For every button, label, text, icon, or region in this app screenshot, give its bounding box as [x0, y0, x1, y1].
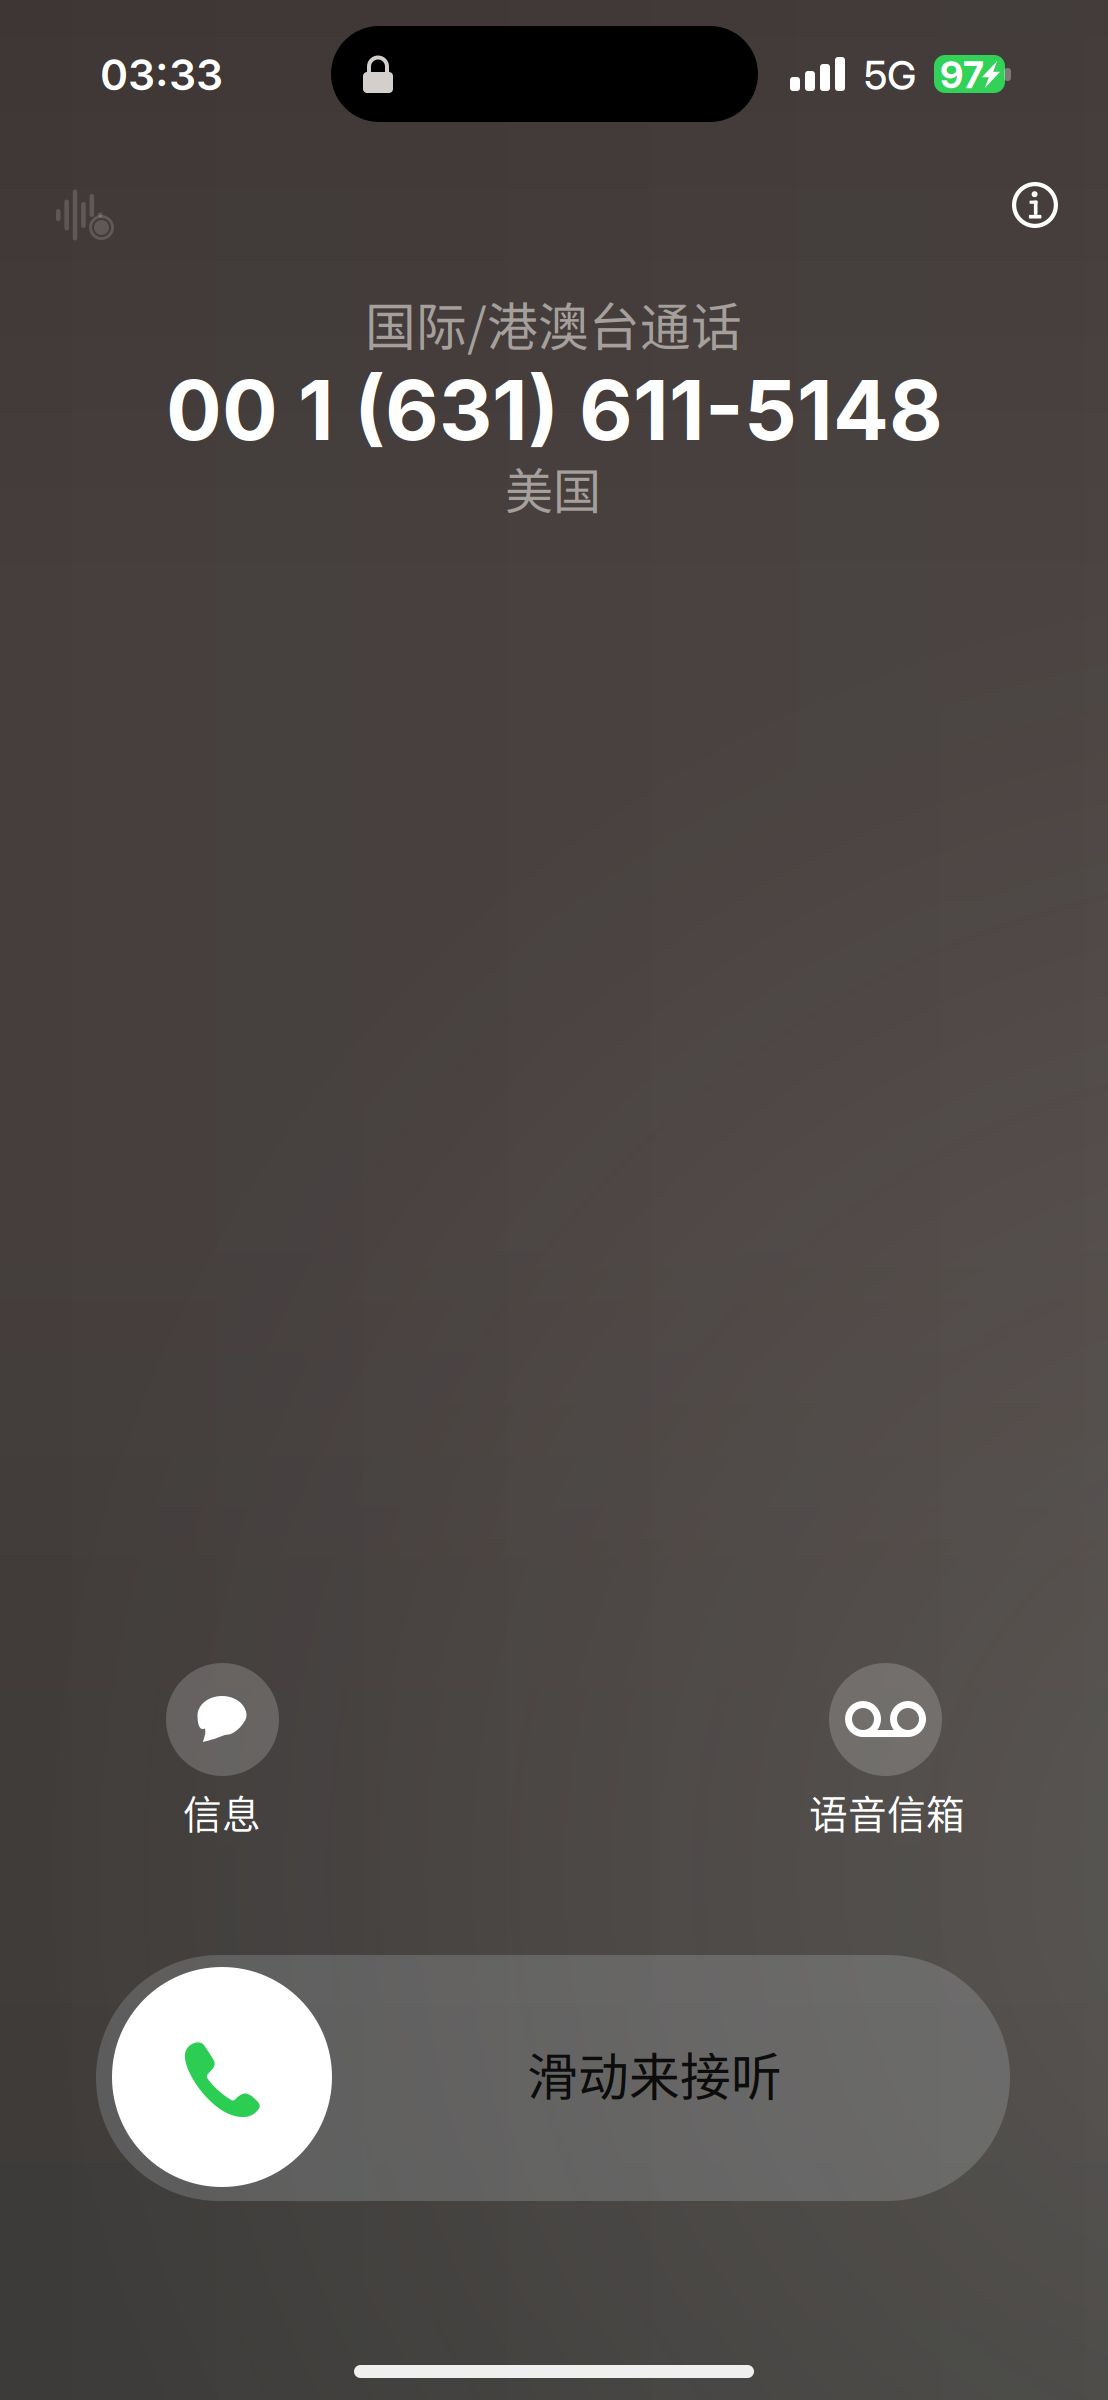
staticText: 03:33: [100, 49, 223, 101]
staticText: 信息: [183, 1784, 261, 1840]
staticText: 97: [940, 52, 984, 97]
staticText: 滑动来接听: [527, 2037, 782, 2110]
staticText: 语音信箱: [809, 1784, 965, 1840]
staticText: 00 1 (631) 611-5148: [166, 360, 943, 460]
staticText: 5G: [864, 51, 916, 99]
button[interactable]: Call details: [989, 159, 1081, 251]
staticText: 美国: [505, 453, 601, 522]
staticText: 国际/港澳台通话: [365, 287, 742, 360]
button[interactable]: 语音信箱: [771, 1663, 1001, 1843]
button[interactable]: 滑动来接听: [96, 1955, 1010, 2201]
button[interactable]: 信息: [108, 1663, 338, 1843]
button[interactable]: Voice isolation: [34, 165, 138, 269]
